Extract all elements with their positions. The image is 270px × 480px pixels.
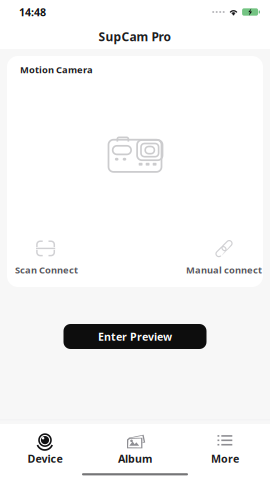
staticText: Motion Camera <box>20 63 93 76</box>
staticText: Scan Connect <box>15 264 78 276</box>
button[interactable]: Manual connect <box>186 240 263 276</box>
staticText: More <box>211 452 239 466</box>
staticText: 14:48 <box>19 5 46 19</box>
button[interactable]: Enter Preview <box>63 324 206 349</box>
staticText: Device <box>27 452 62 466</box>
button[interactable]: Album <box>90 431 180 465</box>
staticText: Album <box>118 452 152 466</box>
staticText: SupCam Pro <box>98 28 171 44</box>
button[interactable]: Scan Connect <box>7 241 78 276</box>
button[interactable]: More <box>180 431 270 465</box>
button[interactable]: Device <box>0 431 90 465</box>
staticText: Manual connect <box>186 264 262 276</box>
staticText: Enter Preview <box>98 329 172 344</box>
